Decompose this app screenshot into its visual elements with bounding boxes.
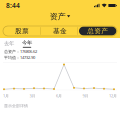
staticText: 总资产：176806.62	[4, 49, 37, 54]
staticText: 显示全部详情	[4, 103, 28, 108]
staticText: 6月	[56, 93, 62, 98]
staticText: 今年	[22, 39, 32, 46]
staticText: 3月	[29, 93, 35, 98]
button[interactable]: 基金	[41, 26, 79, 36]
button[interactable]: 资产	[0, 11, 120, 22]
staticText: 平均值：14732.90	[4, 55, 35, 60]
button[interactable]: 今年	[22, 39, 32, 48]
staticText: 股票	[15, 27, 29, 35]
staticText: 8:44	[6, 1, 20, 10]
staticText: 去年	[4, 40, 14, 47]
staticText: 基金	[53, 27, 67, 35]
button[interactable]: 显示全部详情	[4, 103, 28, 108]
button[interactable]: 总资产	[79, 26, 117, 36]
staticText: 12月	[109, 93, 117, 98]
staticText: 1月	[3, 93, 9, 98]
button[interactable]: 去年	[4, 40, 14, 47]
button[interactable]: 股票	[3, 26, 41, 36]
staticText: 资产	[50, 12, 66, 21]
staticText: 总资产	[87, 27, 108, 35]
staticText: 9月	[82, 93, 88, 98]
